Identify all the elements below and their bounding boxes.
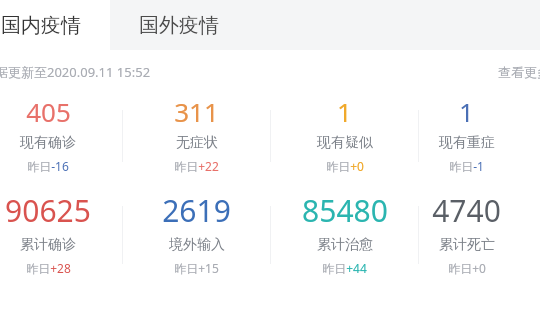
staticText: 昨日+22 xyxy=(174,158,219,174)
staticText: 现有重症 xyxy=(439,134,495,152)
staticText: 1 xyxy=(337,94,352,129)
button[interactable]: 查看更多 xyxy=(494,60,540,84)
button[interactable]: 85480 xyxy=(271,190,418,276)
button[interactable]: 国外疫情 xyxy=(110,0,248,50)
staticText: 昨日-1 xyxy=(449,158,484,174)
staticText: 查看更多 xyxy=(498,64,540,80)
button[interactable]: 国内疫情 xyxy=(0,0,110,50)
staticText: 昨日+15 xyxy=(174,260,219,276)
staticText: 现有疑似 xyxy=(317,134,373,152)
button[interactable]: 90625 xyxy=(0,190,122,276)
staticText: 累计死亡 xyxy=(439,236,495,254)
button[interactable]: 405 xyxy=(0,94,122,174)
staticText: 昨日+44 xyxy=(322,260,367,276)
staticText: 昨日+0 xyxy=(448,260,486,276)
staticText: 累计确诊 xyxy=(20,236,76,254)
staticText: 311 xyxy=(174,94,219,129)
staticText: 国内疫情 xyxy=(1,13,81,38)
button[interactable]: 311 xyxy=(123,94,270,174)
staticText: 无症状 xyxy=(176,134,218,152)
button[interactable]: 2619 xyxy=(123,190,270,276)
staticText: 2619 xyxy=(162,190,231,231)
staticText: 4740 xyxy=(432,190,501,231)
button[interactable]: 4740 xyxy=(419,190,514,276)
staticText: 昨日-16 xyxy=(27,158,69,174)
staticText: 405 xyxy=(26,94,71,129)
staticText: 现有确诊 xyxy=(20,134,76,152)
staticText: 累计治愈 xyxy=(317,236,373,254)
staticText: 国外疫情 xyxy=(139,13,219,38)
button[interactable]: 1 xyxy=(419,94,514,174)
staticText: 数据更新至2020.09.11 15:52 xyxy=(0,63,151,81)
staticText: 90625 xyxy=(5,190,91,231)
staticText: 境外输入 xyxy=(169,236,225,254)
staticText: 1 xyxy=(459,94,474,129)
staticText: 昨日+0 xyxy=(326,158,364,174)
staticText: 昨日+28 xyxy=(26,260,71,276)
button[interactable]: 1 xyxy=(271,94,418,174)
staticText: 85480 xyxy=(302,190,388,231)
